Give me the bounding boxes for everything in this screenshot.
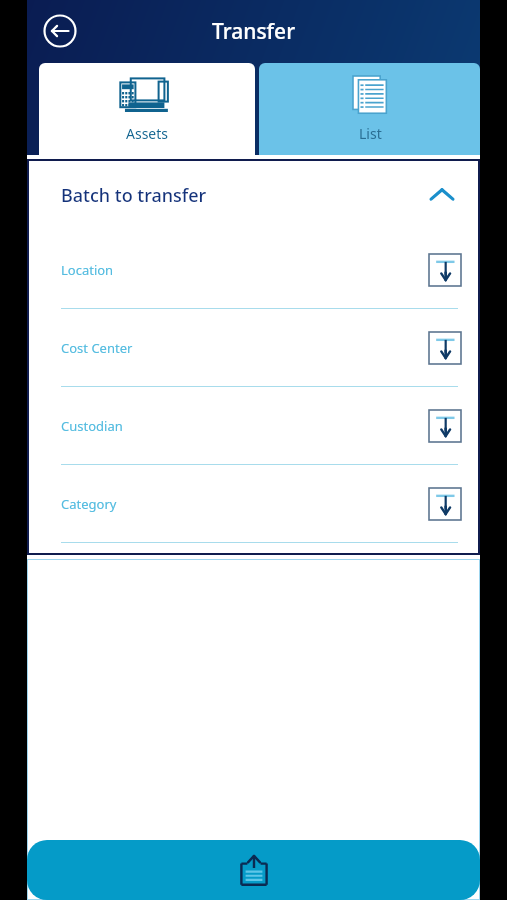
other: Select — [428, 409, 462, 443]
button[interactable]: Batch to transfer — [45, 159, 462, 231]
button[interactable]: Cost Center — [45, 309, 462, 387]
other: Select — [428, 331, 462, 365]
other: Select — [428, 253, 462, 287]
staticText: Category — [61, 495, 428, 513]
other: Collapse — [422, 175, 462, 215]
button[interactable]: Submit transfer — [27, 840, 480, 900]
staticText: Custodian — [61, 417, 428, 435]
button[interactable]: Category — [45, 465, 462, 543]
button[interactable]: Assets — [39, 63, 255, 155]
staticText: Location — [61, 261, 428, 279]
button[interactable]: Back — [39, 10, 81, 52]
button[interactable]: Custodian — [45, 387, 462, 465]
staticText: Transfer — [212, 17, 296, 46]
button[interactable]: List — [259, 63, 480, 155]
staticText: Batch to transfer — [61, 183, 422, 208]
other: Select — [428, 487, 462, 521]
staticText: Cost Center — [61, 339, 428, 357]
staticText: Assets — [126, 124, 169, 143]
button[interactable]: Location — [45, 231, 462, 309]
staticText: List — [359, 124, 382, 143]
